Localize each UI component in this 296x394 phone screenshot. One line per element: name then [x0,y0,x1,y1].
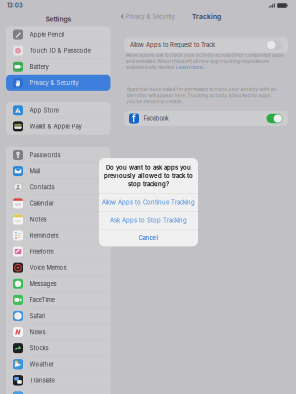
staticText: stop tracking? [128,180,169,188]
staticText: f [132,113,136,124]
button[interactable]: Learn more... [176,65,206,70]
staticText: Weather [29,361,53,368]
button[interactable]: Freeform [6,243,110,260]
staticText: Translate [29,377,54,384]
staticText: Voice Memos [29,264,66,271]
staticText: Messages [29,280,56,287]
button[interactable]: Safari [6,308,110,324]
button[interactable]: Stocks [6,340,110,356]
staticText: Contacts [29,183,54,191]
button[interactable]: Wallet & Apple Pay [6,118,110,134]
staticText: automatically denied. [126,65,176,70]
staticText: Touch ID & Passcode [29,47,90,54]
button[interactable]: Maps [6,388,110,394]
button[interactable]: Mail [6,163,110,179]
button[interactable]: f [124,111,288,126]
staticText: Freeform [29,248,53,255]
button[interactable]: App Store [6,102,110,118]
button[interactable]: Touch ID & Passcode [6,43,110,59]
button[interactable]: Allow Apps to Continue Tracking [99,193,198,211]
staticText: Calendar [29,200,53,207]
staticText: previously allowed to track to [104,172,193,179]
button[interactable]: Ask Apps to Stop Tracking [99,211,198,229]
staticText: FaceTime [29,296,54,303]
staticText: Battery [29,63,48,70]
button[interactable]: Passwords [6,147,110,163]
button[interactable]: Apple Pencil [6,26,110,43]
staticText: Notes [29,216,46,223]
button[interactable]: Privacy & Security [6,75,110,91]
staticText: you've denied access to. [126,99,182,104]
staticText: News [29,328,45,336]
staticText: Stocks [29,344,48,352]
button[interactable]: Calendar [6,195,110,211]
button[interactable]: FaceTime [6,292,110,308]
button[interactable]: Voice Memos [6,260,110,276]
staticText: Privacy & Security [125,13,174,20]
button[interactable]: Messages [6,276,110,292]
staticText: Passwords [29,151,60,159]
staticText: identifier will appear here. Tracking ac… [126,93,269,98]
button[interactable]: Cancel [99,229,198,246]
staticText: Mail [29,167,39,175]
staticText: Allow apps to ask to track your activity… [126,52,283,58]
staticText: 13:03 [7,2,23,9]
staticText: Apple Pencil [29,31,63,38]
button[interactable]: Contacts [6,179,110,195]
staticText: Settings [45,15,71,23]
staticText: Apps that have asked for permission to t… [126,86,276,92]
button[interactable]: Weather [6,356,110,372]
button[interactable]: Translate [6,372,110,388]
staticText: Safari [29,312,44,320]
button[interactable]: Notes [6,211,110,227]
button[interactable]: Reminders [6,227,110,243]
staticText: Allow Apps to Request to Track [130,41,215,48]
staticText: Ask Apps to Stop Tracking [110,217,187,224]
button[interactable]: Battery [6,59,110,75]
button[interactable]: Privacy & Security [117,11,174,22]
staticText: Tracking [192,12,221,21]
staticText: Cancel [138,234,158,242]
staticText: Wallet & Apple Pay [29,123,81,130]
staticText: Learn more... [176,65,206,70]
staticText: Allow Apps to Continue Tracking [102,199,195,206]
staticText: Reminders [29,232,58,239]
staticText: and websites. When this is off, all new … [126,58,269,64]
button[interactable]: News [6,324,110,340]
staticText: Do you want to ask apps you [106,164,191,171]
staticText: Facebook [143,115,168,122]
staticText: Privacy & Security [29,79,78,86]
button[interactable]: Allow Apps to Request to Track [124,37,288,52]
staticText: App Store [29,107,58,114]
